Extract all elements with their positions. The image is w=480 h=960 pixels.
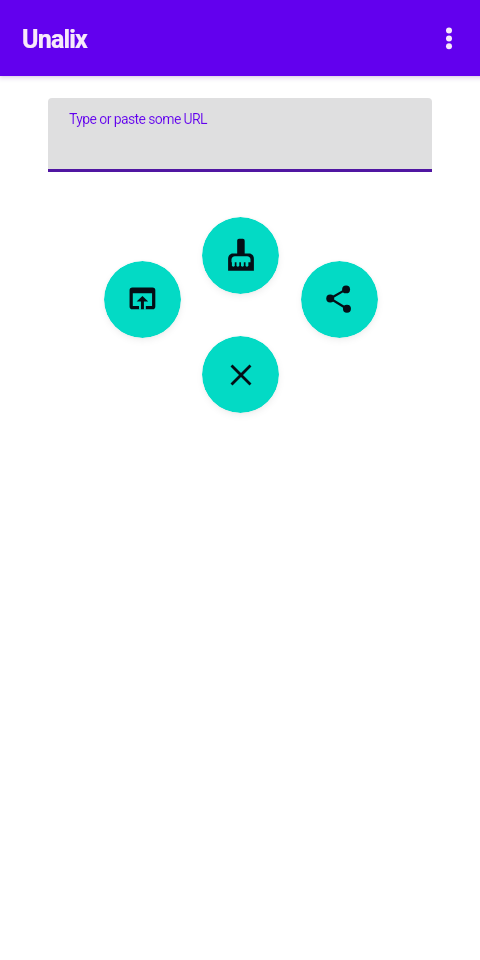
button[interactable]: Clean URL — [202, 217, 279, 294]
button[interactable]: Clear — [202, 336, 279, 413]
staticText: Unalix — [22, 25, 88, 54]
button[interactable]: Share — [301, 261, 378, 338]
staticText: Type or paste some URL — [69, 111, 208, 127]
button[interactable]: Open in browser — [104, 261, 181, 338]
button[interactable]: More options — [425, 14, 473, 62]
button[interactable]: Type or paste some URL — [48, 98, 432, 172]
